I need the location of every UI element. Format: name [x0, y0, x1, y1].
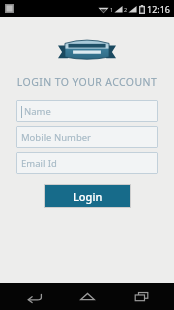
staticText: Email Id	[21, 157, 57, 170]
button[interactable]: Recent apps	[121, 283, 161, 310]
button[interactable]: Mobile Number	[16, 126, 158, 148]
staticText: Name	[24, 105, 51, 118]
staticText: 2	[124, 6, 128, 13]
button[interactable]: Login	[45, 185, 130, 207]
staticText: 1	[110, 6, 114, 13]
staticText: LOGIN TO YOUR ACCOUNT	[0, 75, 174, 89]
staticText: Mobile Number	[21, 131, 92, 144]
staticText: 12:16	[147, 3, 171, 15]
button[interactable]: Home	[67, 283, 107, 310]
button[interactable]: Email Id	[16, 152, 158, 174]
staticText: Login	[73, 189, 103, 204]
button[interactable]: Name	[16, 100, 158, 122]
button[interactable]: Back	[14, 283, 54, 310]
